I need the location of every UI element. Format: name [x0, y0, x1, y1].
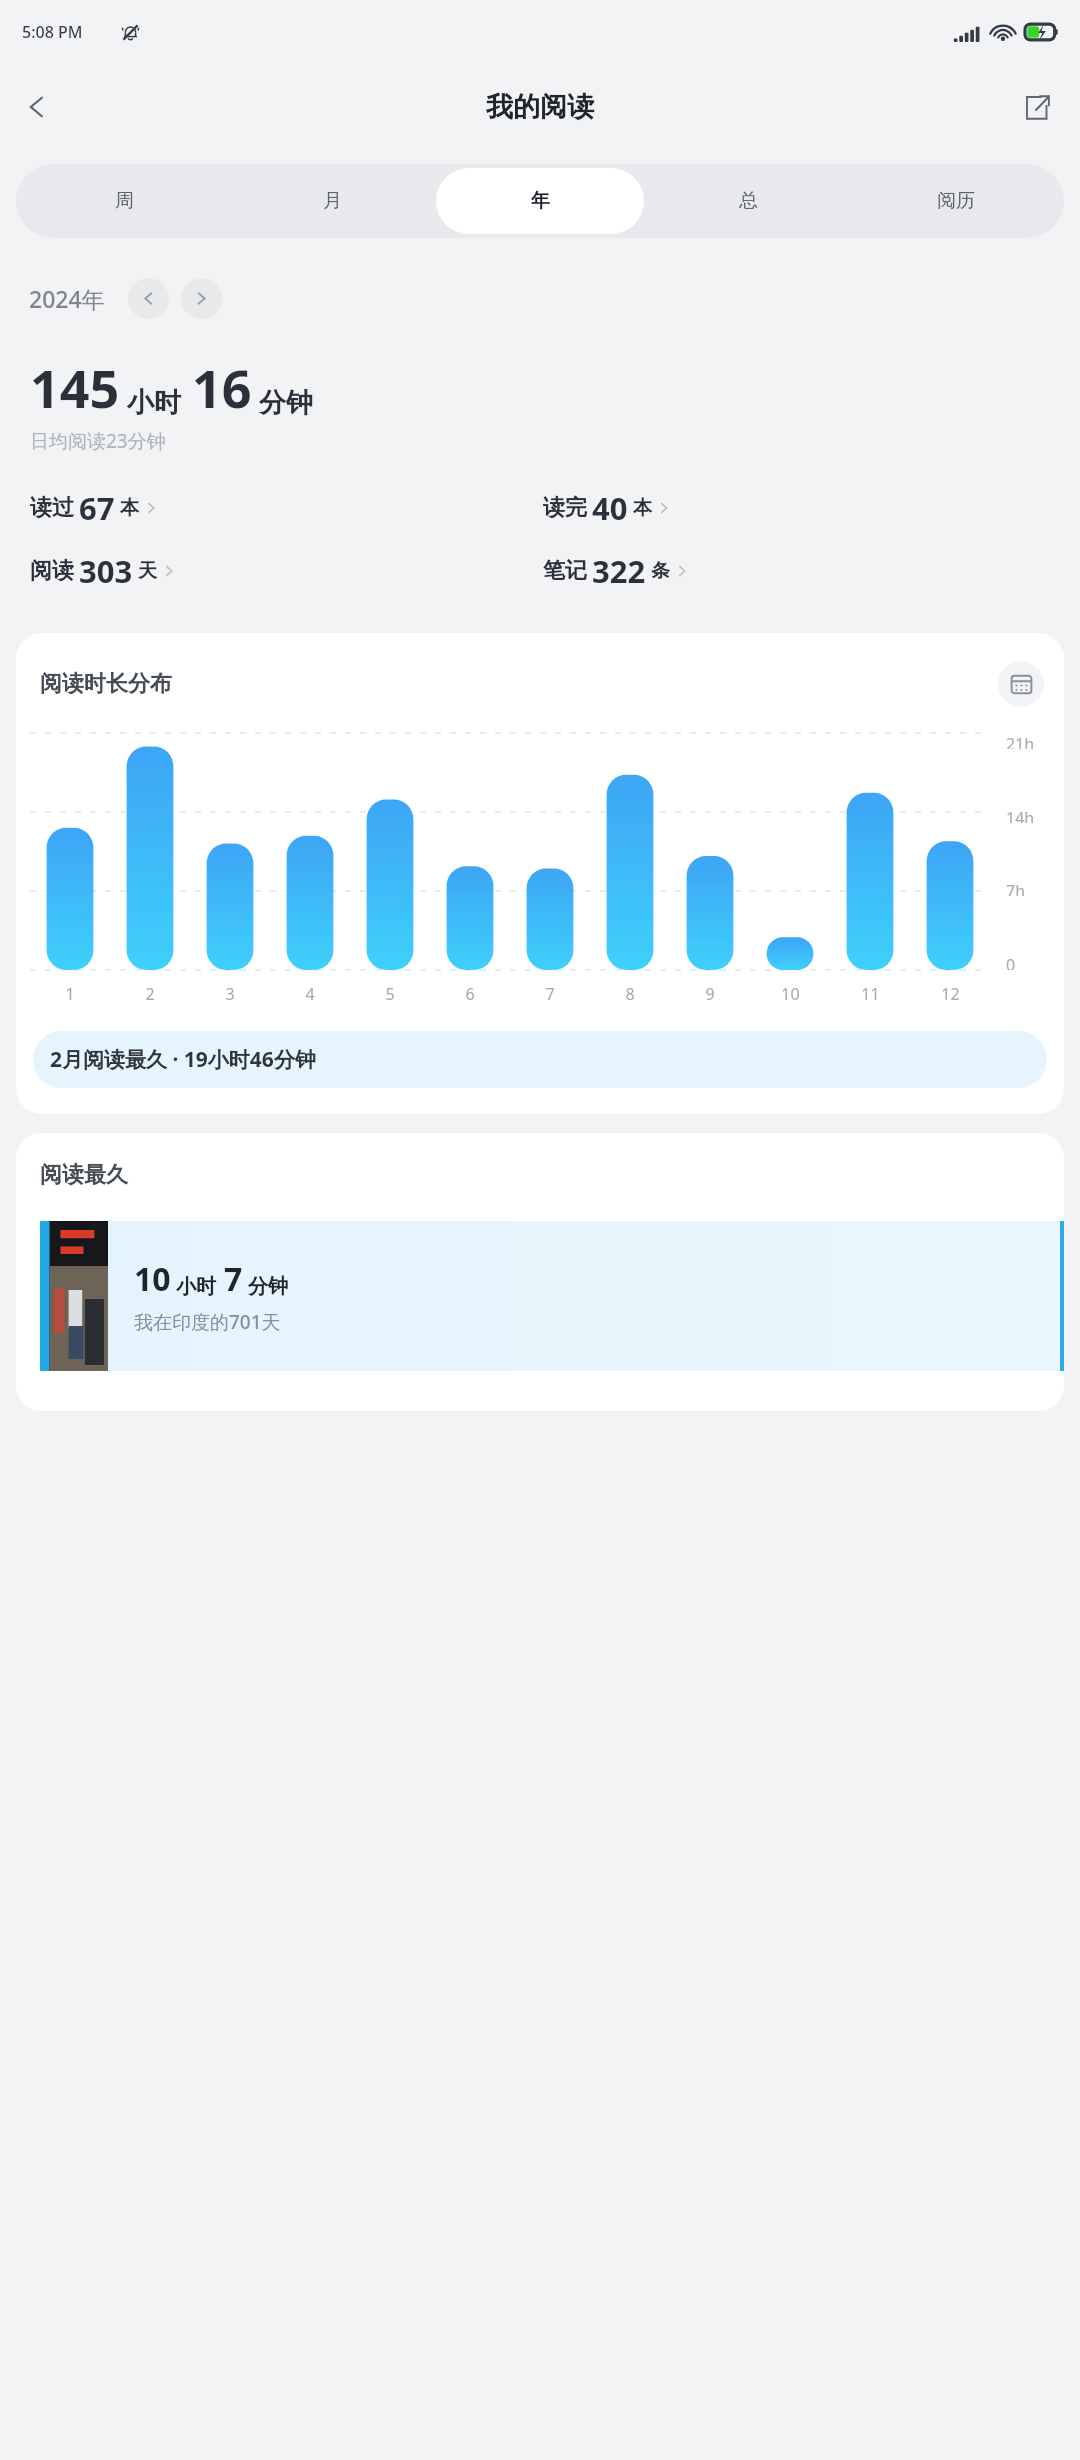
staticText: 读完 — [543, 494, 587, 522]
staticText: 分钟 — [248, 1274, 288, 1299]
staticText: 我的阅读 — [486, 90, 594, 124]
staticText: 周 — [115, 189, 134, 213]
staticText: 7h — [1006, 880, 1026, 896]
staticText: 21h — [1006, 733, 1035, 749]
button[interactable]: 阅历 — [852, 168, 1060, 234]
staticText: 1 — [65, 983, 75, 1005]
staticText: 小时 — [176, 1274, 216, 1299]
staticText: 本 — [120, 496, 139, 520]
staticText: 天 — [138, 559, 157, 583]
staticText: 40 — [592, 487, 628, 529]
staticText: 年 — [531, 189, 550, 213]
button[interactable]: 月 — [228, 168, 436, 234]
button[interactable]: Next year — [181, 278, 222, 319]
staticText: 12 — [941, 983, 960, 1005]
staticText: 0 — [1006, 954, 1016, 970]
staticText: 阅历 — [937, 189, 975, 213]
staticText: 阅读最久 — [40, 1161, 128, 1189]
staticText: 5 — [385, 983, 395, 1005]
staticText: 本 — [633, 496, 652, 520]
staticText: 读过 — [30, 494, 74, 522]
staticText: 14h — [1006, 807, 1035, 823]
staticText: 8 — [625, 983, 635, 1005]
button[interactable]: 周 — [20, 168, 228, 234]
staticText: 5:08 PM — [22, 21, 83, 43]
staticText: 7 — [224, 1257, 243, 1301]
button[interactable]: 读过 — [30, 484, 543, 532]
staticText: 4 — [305, 983, 315, 1005]
button[interactable]: 年 — [436, 168, 644, 234]
staticText: 2024年 — [29, 283, 105, 314]
staticText: 我在印度的701天 — [134, 1309, 281, 1335]
staticText: 11 — [861, 983, 880, 1005]
staticText: 月 — [323, 189, 342, 213]
button[interactable]: Calendar — [998, 661, 1044, 707]
button[interactable]: 总 — [644, 168, 852, 234]
staticText: 总 — [739, 189, 758, 213]
staticText: 6 — [465, 983, 475, 1005]
staticText: 67 — [79, 487, 115, 529]
button[interactable]: Share — [1008, 78, 1066, 136]
staticText: 10 — [781, 983, 800, 1005]
staticText: 7 — [545, 983, 555, 1005]
button[interactable]: 2月阅读最久 · 19小时46分钟 — [33, 1031, 1047, 1088]
staticText: 分钟 — [259, 386, 313, 420]
staticText: 3 — [225, 983, 235, 1005]
staticText: 笔记 — [543, 557, 587, 585]
staticText: 2月阅读最久 · 19小时46分钟 — [50, 1045, 316, 1074]
button[interactable]: 10 — [16, 1221, 1064, 1371]
staticText: 日均阅读23分钟 — [30, 428, 166, 454]
staticText: 145 — [30, 352, 120, 423]
staticText: 阅读时长分布 — [40, 670, 172, 698]
staticText: 小时 — [127, 386, 181, 420]
button[interactable]: 笔记 — [543, 547, 1056, 595]
staticText: 16 — [192, 352, 252, 423]
button[interactable]: Back — [8, 78, 66, 136]
staticText: 303 — [79, 550, 133, 592]
button[interactable]: 阅读 — [30, 547, 543, 595]
staticText: 9 — [705, 983, 715, 1005]
staticText: 条 — [651, 559, 670, 583]
button[interactable]: Previous year — [128, 278, 169, 319]
staticText: 阅读 — [30, 557, 74, 585]
staticText: 2 — [145, 983, 155, 1005]
button[interactable]: 读完 — [543, 484, 1056, 532]
staticText: 10 — [134, 1257, 171, 1301]
staticText: 322 — [592, 550, 646, 592]
